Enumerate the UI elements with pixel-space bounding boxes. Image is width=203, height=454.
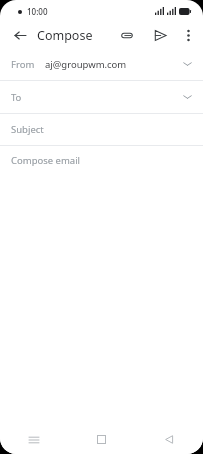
button[interactable]: Subject	[0, 114, 203, 145]
button[interactable]: Back	[12, 27, 29, 44]
staticText: To	[11, 91, 22, 104]
button[interactable]: From	[0, 48, 203, 80]
staticText: aj@groupwm.com	[45, 58, 127, 71]
button[interactable]: Back	[135, 425, 203, 454]
button[interactable]: Compose email	[0, 146, 203, 174]
button[interactable]: Send	[150, 25, 170, 45]
staticText: Subject	[11, 123, 44, 136]
staticText: Compose	[37, 27, 93, 44]
button[interactable]: More options	[179, 26, 197, 44]
button[interactable]: Home	[67, 425, 135, 454]
button[interactable]: Recent apps	[0, 425, 67, 454]
button[interactable]: To	[0, 81, 203, 113]
staticText: Compose email	[11, 154, 81, 167]
staticText: 10:00	[27, 6, 48, 17]
staticText: From	[11, 58, 35, 71]
button[interactable]: Attach file	[117, 25, 137, 45]
